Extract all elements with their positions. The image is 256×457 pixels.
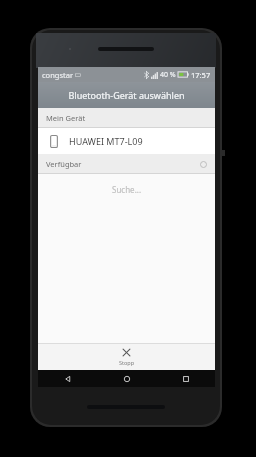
staticText: 17:57 bbox=[191, 70, 211, 80]
staticText: Stopp bbox=[119, 359, 135, 366]
staticText: Verfügbar bbox=[46, 159, 82, 169]
button[interactable]: Recent apps bbox=[156, 370, 215, 387]
button[interactable]: Back bbox=[38, 370, 97, 387]
staticText: HUAWEI MT7-L09 bbox=[69, 135, 143, 147]
staticText: 40 % bbox=[160, 70, 176, 80]
staticText: Bluetooth-Gerät auswählen bbox=[68, 89, 185, 101]
button[interactable]: Stopp bbox=[38, 343, 215, 370]
staticText: congstar bbox=[42, 70, 73, 80]
staticText: Suche... bbox=[112, 184, 142, 195]
staticText: Mein Gerät bbox=[46, 113, 86, 123]
button[interactable]: Home bbox=[97, 370, 156, 387]
button[interactable]: HUAWEI MT7-L09 bbox=[38, 128, 215, 154]
